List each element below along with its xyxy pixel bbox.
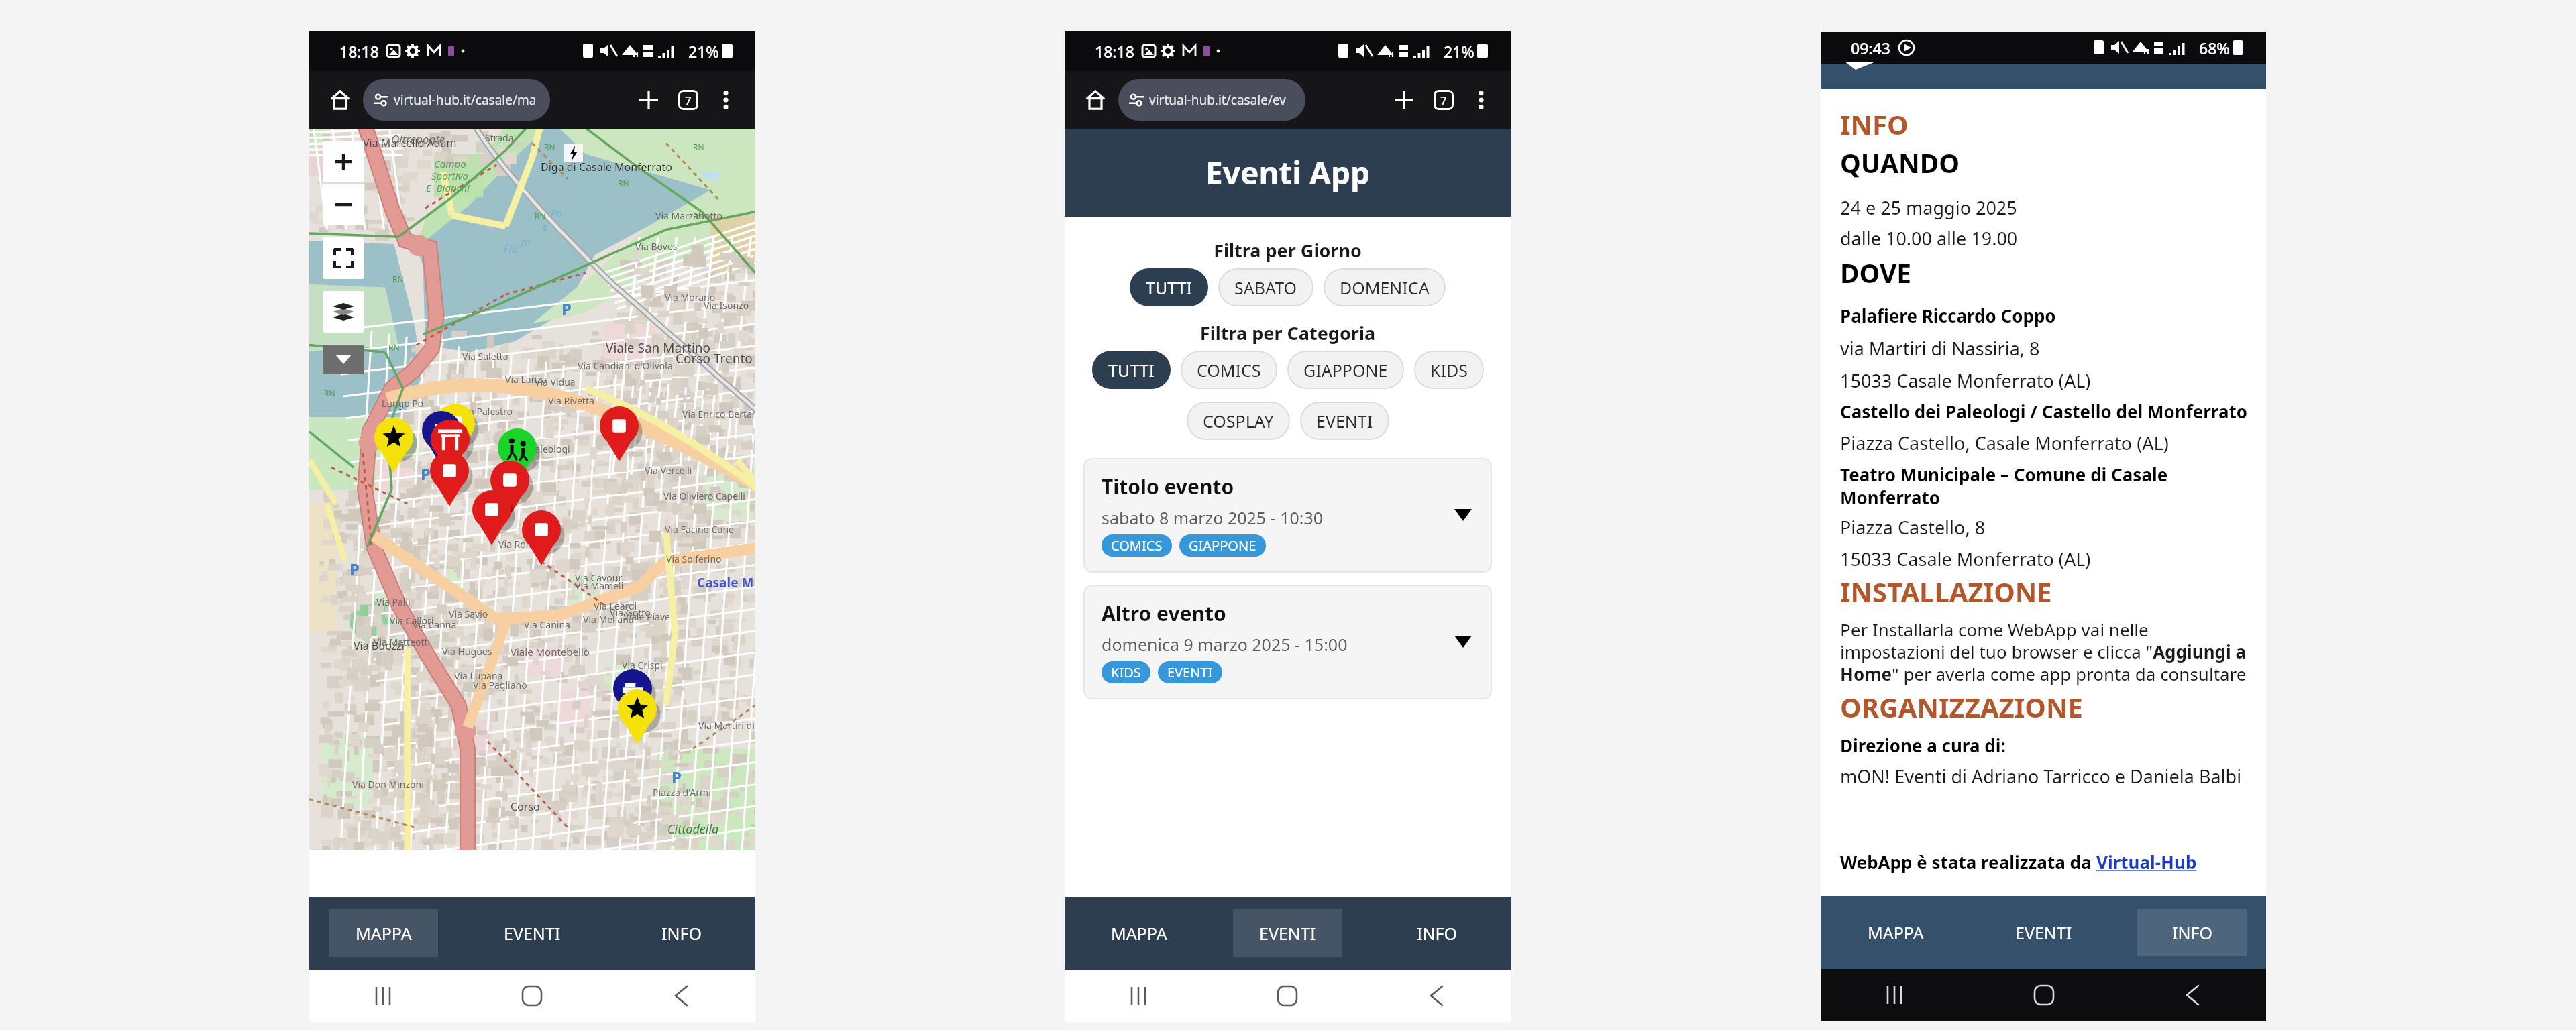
staticText: Via Canina	[524, 618, 570, 631]
button[interactable]: EVENTI	[1970, 896, 2118, 969]
button[interactable]: SABATO	[1218, 268, 1313, 306]
staticText: MAPPA	[1111, 922, 1167, 945]
button[interactable]: Fullscreen	[323, 237, 364, 279]
staticText: Via Marzabotto	[655, 209, 722, 222]
staticText: COMICS	[1197, 359, 1261, 382]
staticText: Via Palestro	[461, 405, 513, 418]
button[interactable]: DOMENICA	[1324, 268, 1446, 306]
button[interactable]: More options	[711, 85, 741, 115]
staticText: Via Palli	[376, 595, 411, 608]
staticText: COSPLAY	[1203, 410, 1274, 433]
staticText: Oltreponte	[391, 131, 445, 147]
button[interactable]: COSPLAY	[1187, 402, 1290, 440]
button[interactable]: Legend	[323, 345, 364, 374]
staticText: DOVE	[1840, 255, 1912, 290]
staticText: Via Leardi	[594, 599, 637, 612]
staticText: domenica 9 marzo 2025 - 15:00	[1102, 633, 1348, 656]
button[interactable]: Zoom out	[323, 184, 364, 225]
staticText: Castello dei Paleologi / Castello del Mo…	[1840, 400, 2248, 423]
staticText: Eventi App	[1205, 152, 1371, 194]
staticText: virtual-hub.it/casale/ev	[1149, 91, 1286, 109]
staticText: 68%	[2199, 38, 2230, 58]
staticText: EVENTI	[504, 922, 561, 945]
button[interactable]: INFO	[1362, 897, 1511, 970]
staticText: INFO	[2172, 921, 2212, 944]
staticText: virtual-hub.it/casale/ma	[394, 91, 537, 109]
staticText: Via Don Minzoni	[352, 778, 424, 791]
staticText: P	[421, 463, 431, 485]
staticText: ORGANIZZAZIONE	[1840, 689, 2083, 725]
staticText: Via Mameli	[575, 579, 624, 592]
button[interactable]: Expand event	[1450, 502, 1476, 528]
staticText: Po	[551, 206, 562, 219]
staticText: Via Oliviero Capelli	[663, 490, 745, 502]
button[interactable]: EVENTI	[1213, 897, 1362, 970]
staticText: TUTTI	[1108, 359, 1155, 382]
staticText: P	[561, 298, 572, 320]
staticText: Piazza Castello, 8	[1840, 515, 1986, 540]
staticText: Campo	[434, 157, 466, 170]
staticText: Via Martiri di Nassiria	[698, 719, 755, 732]
button[interactable]: Address bar	[1118, 79, 1305, 121]
staticText: Altro evento	[1102, 599, 1226, 627]
staticText: Via Boves	[635, 240, 678, 253]
staticText: RN	[693, 141, 704, 152]
button[interactable]: New tab	[632, 83, 665, 117]
button[interactable]: INFO	[606, 897, 755, 970]
staticText: Cittadella	[667, 821, 719, 838]
staticText: Via Matteotti	[374, 636, 431, 648]
button[interactable]: MAPPA	[1065, 897, 1213, 970]
staticText: Palafiere Riccardo Coppo	[1840, 304, 2056, 327]
staticText: Piazza d'Armi	[653, 786, 711, 799]
button[interactable]: Address bar	[363, 79, 550, 121]
staticText: Per Installarla come WebApp vai nelle im…	[1840, 618, 2247, 686]
staticText: Via Lanza	[505, 373, 547, 386]
button[interactable]: EVENTI	[1300, 402, 1389, 440]
button[interactable]: GIAPPONE	[1287, 351, 1404, 389]
staticText: 09:43	[1851, 38, 1890, 58]
staticText: Via Solferino	[666, 553, 722, 565]
staticText: RN	[324, 388, 335, 398]
staticText: EVENTI	[1259, 922, 1316, 945]
button[interactable]: TUTTI	[1130, 268, 1208, 306]
staticText: Via Hugues	[442, 645, 492, 658]
button[interactable]: Tabs	[1429, 85, 1458, 115]
staticText: EVENTI	[1167, 663, 1213, 681]
button[interactable]: Titolo evento	[1083, 458, 1492, 573]
staticText: Lungo Po	[382, 397, 424, 410]
button[interactable]: Altro evento	[1083, 585, 1492, 699]
staticText: Casale M	[697, 574, 754, 591]
staticText: 24 e 25 maggio 2025	[1840, 195, 2017, 220]
staticText: dalle 10.00 alle 19.00	[1840, 226, 2018, 251]
button[interactable]: Expand event	[1450, 629, 1476, 654]
staticText: Via Gotto	[610, 606, 651, 619]
staticText: RN	[544, 141, 555, 152]
staticText: Teatro Municipale – Comune di Casale Mon…	[1840, 463, 2168, 510]
staticText: Via Cavour	[575, 571, 623, 584]
button[interactable]: COMICS	[1181, 351, 1277, 389]
staticText: Strada	[485, 131, 514, 144]
staticText: Fiu	[504, 241, 519, 256]
staticText: Via Buozzi	[354, 638, 405, 653]
staticText: GIAPPONE	[1303, 359, 1388, 382]
button[interactable]: MAPPA	[309, 897, 458, 970]
staticText: Corso Trento	[676, 350, 753, 367]
button[interactable]: Tabs	[674, 85, 703, 115]
button[interactable]: INFO	[2118, 896, 2266, 969]
button[interactable]: EVENTI	[458, 897, 606, 970]
button[interactable]: Zoom in	[323, 141, 364, 182]
button[interactable]: MAPPA	[1821, 896, 1970, 969]
staticText: 21%	[1444, 41, 1474, 62]
staticText: COMICS	[1111, 536, 1163, 555]
button[interactable]: Home	[1079, 84, 1112, 116]
button[interactable]: Home	[324, 84, 356, 116]
button[interactable]: New tab	[1387, 83, 1421, 117]
button[interactable]: KIDS	[1414, 351, 1484, 389]
button[interactable]: Layers	[323, 291, 364, 333]
staticText: Via Candiani d'Olivola	[578, 359, 673, 372]
button[interactable]: More options	[1466, 85, 1496, 115]
staticText: RN	[392, 274, 404, 284]
button[interactable]: TUTTI	[1092, 351, 1171, 389]
staticText: RN	[535, 211, 546, 221]
staticText: Via Isonzo	[704, 299, 749, 312]
